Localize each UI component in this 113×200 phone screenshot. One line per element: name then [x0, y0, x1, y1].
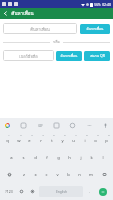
button[interactable]: s [17, 149, 29, 166]
staticText: m [89, 172, 93, 178]
staticText: o [94, 138, 97, 144]
button[interactable]: l [97, 149, 108, 166]
staticText: 3 [31, 133, 33, 136]
staticText: z [23, 172, 25, 178]
button[interactable]: x [30, 166, 41, 183]
button[interactable]: o [90, 132, 101, 149]
button[interactable]: Shift [1, 166, 18, 183]
staticText: GIF [38, 124, 43, 128]
staticText: 02:40 [102, 2, 111, 7]
button[interactable]: q [1, 132, 13, 149]
button[interactable]: e [24, 132, 35, 149]
button[interactable]: j [75, 149, 86, 166]
staticText: u [72, 138, 75, 144]
staticText: j [80, 155, 82, 161]
button[interactable]: u [68, 132, 79, 149]
staticText: g [57, 155, 60, 161]
staticText: หรือ [53, 39, 60, 45]
button[interactable]: ค้นหาเพื่อน [3, 23, 77, 34]
staticText: y [61, 138, 64, 144]
button[interactable]: a [5, 149, 17, 166]
button[interactable]: v [52, 166, 63, 183]
staticText: v [56, 172, 59, 178]
staticText: k [90, 155, 93, 161]
button[interactable]: w [13, 132, 24, 149]
staticText: 0 [108, 133, 110, 136]
staticText: 56% [94, 3, 101, 7]
staticText: เบอร์มือถือ [19, 53, 38, 59]
staticText: English [56, 190, 67, 194]
staticText: . [89, 189, 90, 194]
staticText: r [40, 138, 42, 144]
staticText: 4 [42, 133, 44, 136]
button[interactable]: c [41, 166, 52, 183]
staticText: 7 [75, 133, 77, 136]
button[interactable]: ค้นหาเพื่อน [56, 51, 82, 61]
button[interactable]: n [74, 166, 85, 183]
staticText: 8 [86, 133, 88, 136]
button[interactable]: g [53, 149, 64, 166]
staticText: p [105, 138, 108, 144]
button[interactable]: Emoji [69, 122, 76, 129]
button[interactable]: ?123 [2, 184, 16, 199]
staticText: ค้นหาเพื่อน [30, 26, 50, 32]
button[interactable]: English [39, 186, 83, 197]
staticText: ?123 [5, 189, 13, 194]
staticText: 6 [64, 133, 66, 136]
staticText: a [10, 155, 13, 161]
button[interactable]: k [86, 149, 97, 166]
staticText: x [34, 172, 37, 178]
button[interactable]: d [29, 149, 41, 166]
button[interactable]: Backspace [96, 166, 112, 183]
staticText: 1 [8, 133, 10, 136]
button[interactable]: m [85, 166, 96, 183]
button[interactable]: Emoji [16, 184, 27, 199]
button[interactable]: h [64, 149, 75, 166]
button[interactable]: z [18, 166, 30, 183]
button[interactable]: Google search [4, 122, 11, 129]
staticText: w [17, 138, 21, 144]
staticText: i [84, 138, 86, 144]
button[interactable]: Settings [27, 184, 38, 199]
button[interactable]: r [35, 132, 46, 149]
button[interactable]: i [79, 132, 90, 149]
staticText: e [28, 138, 31, 144]
button[interactable]: สแกน QR [84, 51, 110, 61]
button[interactable]: b [63, 166, 74, 183]
staticText: s [22, 155, 25, 161]
staticText: f [46, 155, 48, 161]
button[interactable]: f [41, 149, 53, 166]
button[interactable]: Voice input [102, 122, 109, 129]
button[interactable]: ค้นหาเพื่อน [80, 24, 110, 34]
button[interactable]: Back [0, 8, 11, 19]
staticText: b [67, 172, 70, 178]
button[interactable]: t [46, 132, 57, 149]
staticText: h [68, 155, 71, 161]
button[interactable]: Enter [95, 185, 110, 198]
button[interactable]: Clipboard [53, 122, 60, 129]
staticText: n [78, 172, 81, 178]
button[interactable]: เบอร์มือถือ [3, 50, 54, 61]
staticText: q [6, 138, 9, 144]
staticText: ค้นหาเพื่อน [11, 10, 34, 17]
staticText: ค้นหาเพื่อน [86, 26, 104, 32]
staticText: c [45, 172, 48, 178]
staticText: 5 [53, 133, 55, 136]
button[interactable]: p [101, 132, 112, 149]
staticText: 9 [97, 133, 99, 136]
button[interactable]: GIF [37, 122, 44, 129]
button[interactable]: More [86, 122, 93, 129]
staticText: l [102, 155, 104, 161]
button[interactable]: Stickers [20, 122, 27, 129]
staticText: 2 [20, 133, 22, 136]
staticText: สแกน QR [90, 53, 105, 59]
staticText: d [34, 155, 37, 161]
staticText: t [51, 138, 53, 144]
button[interactable]: y [57, 132, 68, 149]
staticText: ค้นหาเพื่อน [60, 53, 78, 59]
